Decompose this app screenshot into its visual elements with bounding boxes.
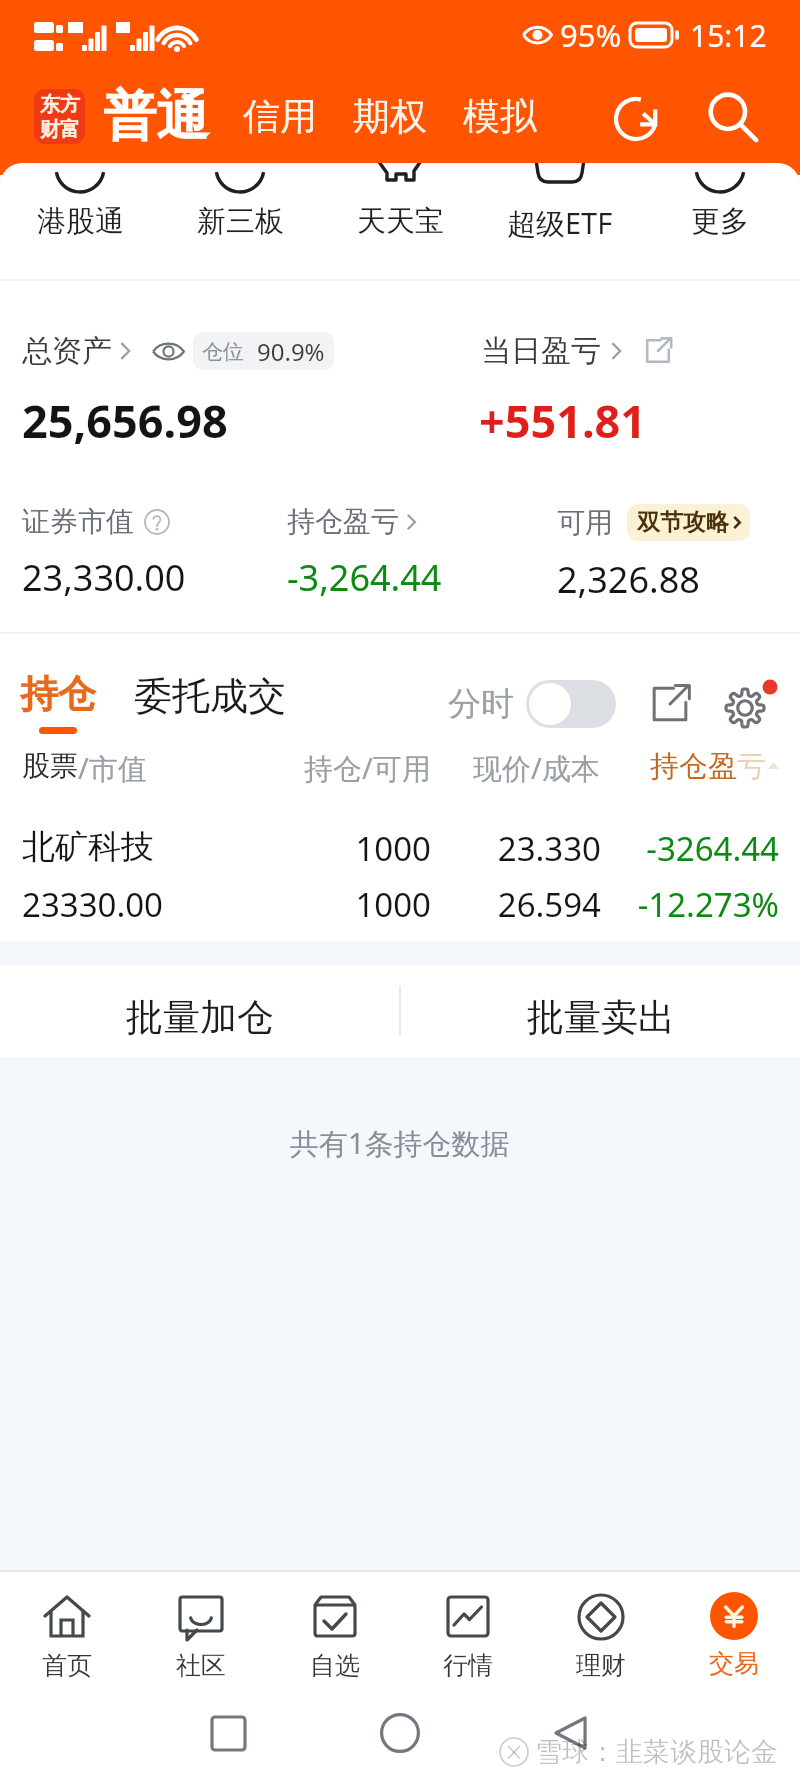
staticText: 亏 [737,748,766,785]
staticText: 持仓盈 [650,748,737,785]
button[interactable]: 港股通 [0,163,160,279]
staticText: 北矿科技 [22,826,154,866]
staticText: -3264.44 [0,826,779,866]
button[interactable]: 行情 [401,1572,534,1689]
button[interactable]: 委托成交 [134,672,286,720]
staticText: -12.273% [0,882,779,922]
staticText: 批量加仓 [126,994,274,1041]
staticText: 新三板 [197,203,284,240]
staticText: 仓位 [202,339,244,365]
staticText: 双节攻略 [637,508,729,537]
staticText: 股票 [22,748,78,783]
staticText: 1000 [0,882,431,922]
staticText: -3,264.44 [287,553,442,602]
button[interactable]: 设置 [722,678,774,730]
button[interactable]: 刷新 [606,86,668,148]
staticText: 港股通 [37,203,124,240]
staticText: 26.594 [0,882,601,922]
button[interactable]: 更多 [640,163,800,279]
button[interactable]: 分时开关 [526,680,616,728]
staticText: 现价/成本 [473,748,600,788]
staticText: 持仓/可用 [304,748,431,788]
button[interactable]: 主屏幕 [377,1710,422,1755]
staticText: 首页 [42,1650,92,1681]
staticText: 自选 [310,1650,360,1681]
button[interactable]: 理财 [534,1572,667,1689]
staticText: 23,330.00 [22,553,186,602]
button[interactable]: 双节攻略 [627,504,750,541]
button[interactable]: 批量加仓 [0,965,399,1057]
staticText: 分时 [448,683,514,725]
staticText: 共有1条持仓数据 [290,1123,510,1163]
staticText: 超级ETF [507,203,613,243]
staticText: 当日盈亏 [481,332,601,370]
staticText: 2,326.88 [557,555,700,604]
button[interactable]: 天天宝 [320,163,480,279]
button[interactable]: 模拟 [463,93,537,140]
staticText: 95% [560,14,622,56]
staticText: 持仓 [20,670,96,718]
button[interactable]: 返回 [548,1710,593,1755]
button[interactable]: 首页 [0,1572,134,1689]
staticText: 1000 [0,826,431,866]
button[interactable]: 当日盈亏 [481,332,673,370]
staticText: 可用 [557,505,613,540]
button[interactable]: 持仓盈亏 [287,504,423,539]
button[interactable]: 自选 [268,1572,401,1689]
button[interactable]: 信用 [243,93,317,140]
button[interactable]: 持仓盈 [650,748,781,785]
staticText: 更多 [691,203,749,240]
button[interactable]: 新三板 [160,163,320,279]
staticText: 理财 [576,1650,626,1681]
staticText: 15:12 [690,15,767,56]
button[interactable]: 持仓 [20,670,96,734]
button[interactable]: 超级ETF [480,163,640,279]
button[interactable]: 搜索 [700,86,762,148]
staticText: 总资产 [22,332,112,370]
staticText: 交易 [709,1648,759,1679]
button[interactable]: 普通 [103,83,209,150]
button[interactable]: 分享 [644,678,696,730]
staticText: 东方 [40,92,80,117]
button[interactable]: 批量卖出 [401,965,800,1057]
staticText: 财富 [40,117,80,142]
staticText: 23330.00 [22,882,163,922]
staticText: /市值 [78,748,147,788]
staticText: 社区 [176,1650,226,1681]
button[interactable]: 北矿科技 [0,796,800,941]
staticText: +551.81 [479,390,647,451]
button[interactable]: 东方财富 [34,89,85,144]
staticText: 25,656.98 [22,390,228,451]
staticText: 证券市值 [22,504,134,539]
staticText: 天天宝 [357,203,444,240]
staticText: 90.9% [257,335,325,368]
button[interactable]: 最近任务 [206,1711,251,1756]
button[interactable]: 社区 [134,1572,268,1689]
button[interactable]: 总资产 [22,332,334,370]
staticText: 23.330 [0,826,601,866]
staticText: 雪球：韭菜谈股论金 [535,1735,778,1769]
button[interactable]: 期权 [353,93,427,140]
button[interactable]: 交易 [667,1572,800,1689]
staticText: 批量卖出 [527,994,675,1041]
staticText: 行情 [443,1650,493,1681]
staticText: 持仓盈亏 [287,504,399,539]
